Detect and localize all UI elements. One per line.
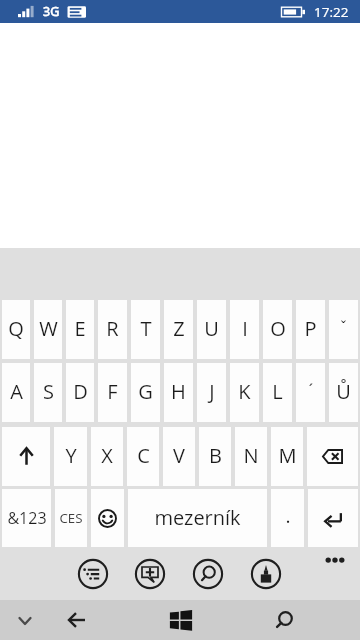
staticText: H — [171, 378, 186, 405]
staticText: F — [107, 378, 118, 405]
staticText: CES — [59, 509, 83, 527]
staticText: C — [137, 442, 150, 469]
staticText: ˇ — [339, 316, 348, 336]
button[interactable]: L — [263, 363, 292, 422]
staticText: V — [173, 442, 185, 469]
button[interactable]: C — [127, 427, 159, 486]
staticText: P — [304, 315, 317, 342]
button[interactable]: I — [230, 300, 259, 359]
staticText: E — [74, 315, 86, 342]
button[interactable]: Backspace — [307, 427, 358, 486]
staticText: ´ — [306, 378, 316, 401]
button[interactable]: Enter — [308, 489, 358, 547]
staticText: mezerník — [154, 504, 241, 531]
button[interactable]: K — [230, 363, 259, 422]
staticText: S — [43, 378, 54, 405]
staticText: U — [204, 315, 219, 342]
button[interactable]: V — [163, 427, 195, 486]
staticText: B — [209, 442, 222, 469]
button[interactable]: J — [197, 363, 226, 422]
button[interactable]: T — [131, 300, 160, 359]
button[interactable]: mezerník — [128, 489, 267, 547]
button[interactable]: Theme — [248, 556, 284, 592]
staticText: 17:22 — [314, 3, 349, 21]
button[interactable]: D — [66, 363, 94, 422]
button[interactable]: ˇ — [329, 300, 358, 359]
button[interactable]: F — [98, 363, 127, 422]
button[interactable]: R — [98, 300, 127, 359]
staticText: &123 — [7, 507, 47, 529]
button[interactable]: W — [34, 300, 62, 359]
button[interactable]: New note — [132, 556, 168, 592]
button[interactable]: More options — [319, 547, 351, 573]
staticText: 3G — [43, 3, 60, 20]
button[interactable]: Q — [2, 300, 30, 359]
button[interactable]: ´ — [296, 363, 325, 422]
staticText: X — [101, 442, 113, 469]
staticText: N — [243, 442, 259, 469]
staticText: A — [10, 378, 23, 405]
button[interactable]: Suggestions — [75, 556, 111, 592]
button[interactable]: A — [2, 363, 30, 422]
button[interactable]: O — [263, 300, 292, 359]
button[interactable]: N — [235, 427, 267, 486]
staticText: L — [272, 378, 283, 405]
staticText: Q — [8, 315, 24, 342]
button[interactable]: P — [296, 300, 325, 359]
button[interactable]: Hide keyboard — [3, 600, 47, 640]
staticText: D — [73, 378, 88, 405]
button[interactable]: . — [271, 489, 304, 547]
staticText: M — [278, 442, 297, 469]
button[interactable]: B — [199, 427, 231, 486]
staticText: . — [285, 503, 291, 529]
button[interactable]: Z — [164, 300, 193, 359]
button[interactable]: G — [131, 363, 160, 422]
button[interactable]: &123 — [2, 489, 51, 547]
button[interactable]: M — [271, 427, 303, 486]
staticText: Ů — [336, 378, 351, 405]
staticText: J — [209, 378, 215, 405]
button[interactable]: S — [34, 363, 62, 422]
button[interactable]: X — [91, 427, 123, 486]
staticText: K — [238, 378, 251, 405]
button[interactable]: Ů — [329, 363, 358, 422]
staticText: O — [270, 315, 286, 342]
button[interactable]: Y — [54, 427, 87, 486]
staticText: G — [138, 378, 153, 405]
button[interactable]: Shift — [2, 427, 50, 486]
button[interactable]: CES — [55, 489, 87, 547]
button[interactable]: E — [66, 300, 94, 359]
button[interactable]: U — [197, 300, 226, 359]
button[interactable]: Start — [155, 600, 207, 640]
staticText: Z — [173, 315, 185, 342]
button[interactable]: Back — [51, 600, 103, 640]
button[interactable]: Search — [258, 600, 310, 640]
staticText: R — [106, 315, 119, 342]
staticText: Y — [65, 442, 77, 469]
button[interactable]: Search — [190, 556, 226, 592]
button[interactable]: H — [164, 363, 193, 422]
staticText: T — [140, 315, 152, 342]
staticText: W — [39, 315, 58, 342]
staticText: I — [242, 315, 248, 342]
button[interactable]: Emoji — [91, 489, 124, 547]
